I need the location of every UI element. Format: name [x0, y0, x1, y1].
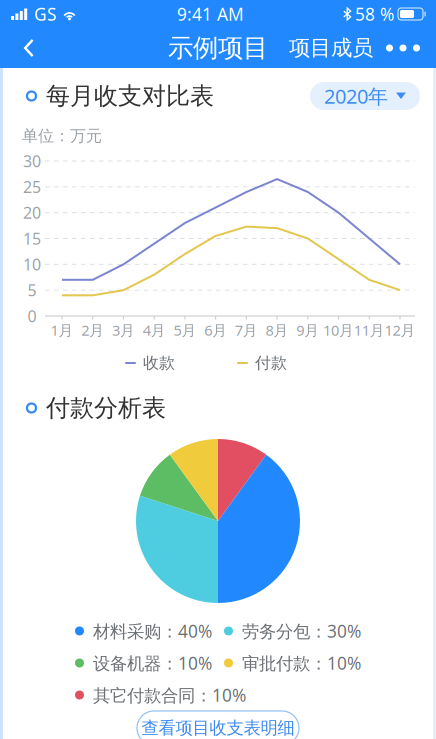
staticText: 收款 — [143, 353, 175, 373]
staticText: 每月收支对比表 — [46, 81, 214, 111]
staticText: 2月 — [81, 320, 104, 340]
staticText: 项目成员 — [289, 35, 373, 61]
button[interactable]: 返回 — [8, 28, 50, 68]
staticText: 5 — [27, 279, 36, 301]
staticText: 10 — [23, 254, 41, 275]
staticText: 5月 — [173, 320, 196, 340]
staticText: 3月 — [112, 320, 135, 340]
staticText: 其它付款合同：10% — [93, 683, 246, 706]
staticText: 9:41 AM — [177, 2, 244, 25]
staticText: 审批付款：10% — [242, 651, 361, 674]
staticText: 8月 — [266, 320, 289, 340]
button[interactable]: 查看项目收支表明细 — [137, 711, 299, 739]
staticText: 付款 — [255, 353, 287, 373]
staticText: 6月 — [204, 320, 227, 340]
staticText: 2020年 — [324, 83, 388, 109]
staticText: 示例项目 — [168, 32, 268, 63]
staticText: 0 — [27, 305, 36, 327]
staticText: 7月 — [235, 320, 258, 340]
staticText: 单位：万元 — [22, 126, 102, 146]
staticText: 付款分析表 — [46, 393, 166, 423]
staticText: 12月 — [384, 320, 415, 340]
staticText: 劳务分包：30% — [242, 619, 361, 642]
button[interactable]: 项目成员 — [284, 28, 378, 68]
staticText: 9月 — [296, 320, 319, 340]
staticText: 1月 — [50, 320, 73, 340]
staticText: 20 — [23, 202, 41, 223]
staticText: 15 — [23, 228, 41, 249]
button[interactable]: 更多 — [378, 28, 428, 68]
staticText: GS — [34, 2, 57, 25]
staticText: 材料采购：40% — [93, 619, 212, 642]
staticText: 10月 — [323, 320, 354, 340]
staticText: 58 % — [355, 2, 394, 25]
staticText: 30 — [23, 150, 41, 172]
staticText: 11月 — [354, 320, 385, 340]
button[interactable]: 2020年 — [310, 82, 420, 110]
staticText: 4月 — [143, 320, 166, 340]
staticText: 查看项目收支表明细 — [141, 717, 294, 739]
staticText: 设备机器：10% — [93, 651, 212, 674]
staticText: 25 — [23, 176, 41, 197]
